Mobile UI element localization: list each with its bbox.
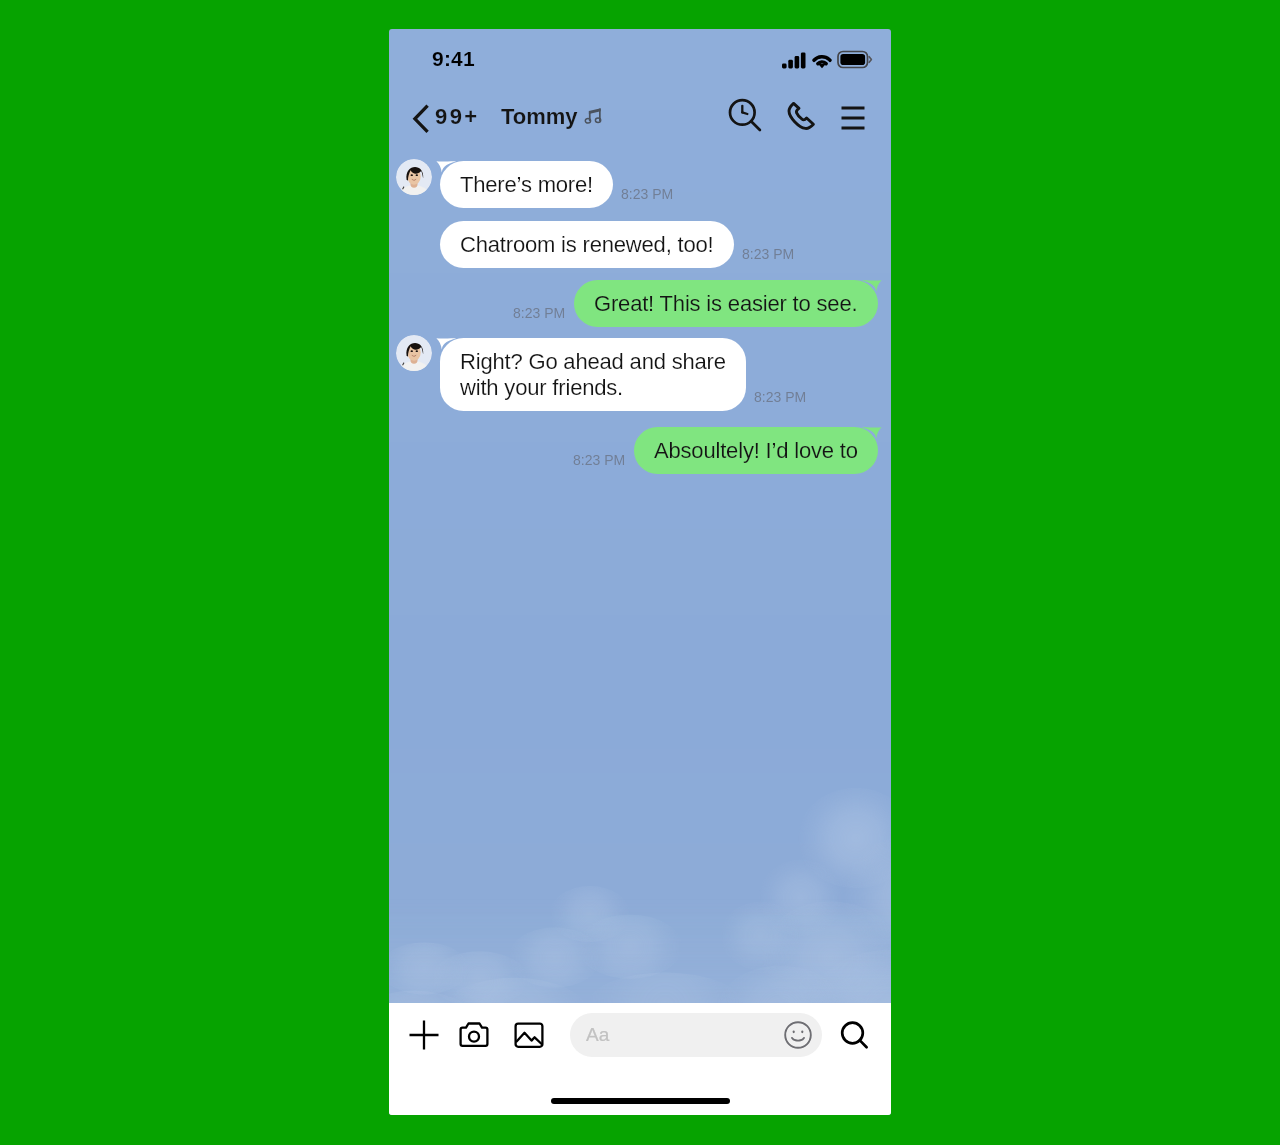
button[interactable]: Menu: [829, 94, 877, 142]
staticText: 9:41: [432, 47, 475, 70]
staticText: 99+: [435, 104, 480, 129]
staticText: 8:23 PM: [742, 246, 795, 262]
button[interactable]: Search messages: [723, 94, 771, 142]
button[interactable]: Great! This is easier to see.: [574, 280, 878, 327]
button[interactable]: Add: [400, 1011, 448, 1059]
button[interactable]: Back to chat list: [405, 92, 605, 144]
staticText: 8:23 PM: [573, 452, 626, 468]
button[interactable]: Chatroom is renewed, too!: [440, 221, 734, 268]
staticText: Absoultely! I’d love to: [654, 438, 858, 463]
staticText: 8:23 PM: [754, 389, 807, 405]
button[interactable]: Emoji: [781, 1018, 815, 1052]
staticText: Chatroom is renewed, too!: [460, 232, 714, 257]
staticText: Tommy: [501, 104, 578, 129]
staticText: Aa: [586, 1024, 610, 1045]
button[interactable]: There’s more!: [440, 161, 613, 208]
button[interactable]: Right? Go ahead and share with your frie…: [440, 338, 746, 411]
button[interactable]: Absoultely! I’d love to: [634, 427, 878, 474]
staticText: 8:23 PM: [513, 305, 566, 321]
button[interactable]: Search: [832, 1013, 880, 1061]
button[interactable]: Camera: [450, 1011, 498, 1059]
button[interactable]: Call: [779, 95, 827, 143]
button[interactable]: Gallery: [505, 1011, 553, 1059]
staticText: There’s more!: [460, 172, 593, 197]
staticText: 8:23 PM: [621, 186, 674, 202]
button[interactable]: Aa: [570, 1013, 822, 1057]
staticText: Great! This is easier to see.: [594, 291, 858, 316]
staticText: Right? Go ahead and share with your frie…: [460, 349, 726, 400]
